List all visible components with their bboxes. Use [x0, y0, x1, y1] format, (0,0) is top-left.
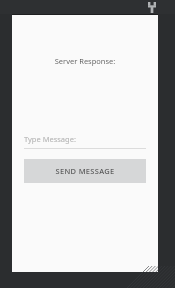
other: Developer tools [148, 2, 156, 13]
staticText: Type Message: [24, 134, 146, 144]
staticText: Server Response: [12, 56, 158, 66]
button[interactable]: SEND MESSAGE [24, 159, 146, 183]
staticText: SEND MESSAGE [24, 166, 146, 176]
button[interactable]: Type Message: [24, 134, 146, 149]
